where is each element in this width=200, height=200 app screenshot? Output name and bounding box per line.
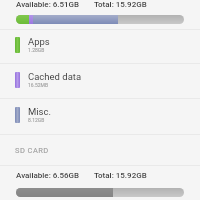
staticText: Available: 6.51GB	[16, 0, 80, 9]
staticText: Available: 6.56GB	[16, 171, 80, 180]
staticText: 16.52MB	[28, 82, 49, 88]
staticText: 1.28GB	[28, 47, 45, 53]
button[interactable]: Misc.	[0, 99, 200, 133]
staticText: 8.12GB	[28, 117, 45, 123]
staticText: Cached data	[28, 71, 82, 82]
staticText: Apps	[28, 36, 50, 47]
button[interactable]: Cached data	[0, 64, 200, 98]
other: Internal storage usage	[16, 15, 184, 24]
staticText: SD CARD	[15, 146, 49, 155]
staticText: Total: 15.92GB	[94, 0, 147, 9]
other: SD card usage	[16, 188, 184, 197]
button[interactable]: Apps	[0, 29, 200, 63]
staticText: Misc.	[28, 106, 51, 117]
staticText: Total: 15.92GB	[94, 171, 147, 180]
